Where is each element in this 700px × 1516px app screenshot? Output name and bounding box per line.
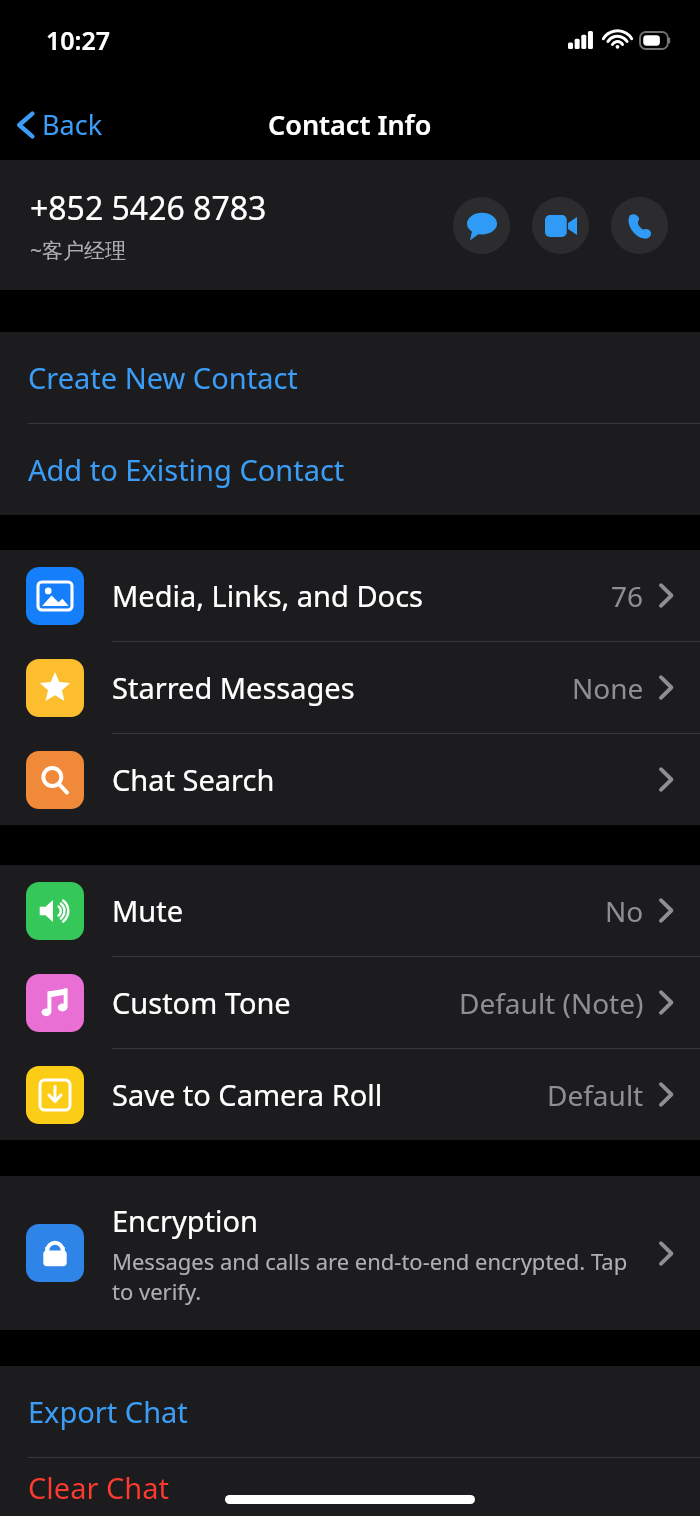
staticText: Clear Chat <box>28 1468 169 1507</box>
button[interactable]: Save to Camera Roll <box>0 1049 700 1140</box>
staticText: Default (Note) <box>459 984 644 1022</box>
button[interactable]: Video call <box>532 197 589 254</box>
staticText: Create New Contact <box>28 358 298 397</box>
staticText: Export Chat <box>28 1392 188 1431</box>
button[interactable]: Message <box>453 197 510 254</box>
button[interactable]: Media, Links, and Docs <box>0 550 700 641</box>
button[interactable]: Export Chat <box>0 1366 700 1457</box>
button[interactable]: Mute <box>0 865 700 956</box>
button[interactable]: Clear Chat <box>0 1458 700 1516</box>
staticText: Save to Camera Roll <box>112 1075 383 1114</box>
staticText: Default <box>547 1076 644 1114</box>
staticText: Contact Info <box>268 106 432 143</box>
button[interactable]: Create New Contact <box>0 332 700 423</box>
button[interactable]: Encryption <box>0 1176 700 1330</box>
staticText: Messages and calls are end-to-end encryp… <box>112 1246 644 1306</box>
staticText: Back <box>42 106 103 143</box>
button[interactable]: Chat Search <box>0 734 700 825</box>
staticText: None <box>572 669 644 707</box>
button[interactable]: Back <box>0 100 117 149</box>
staticText: 76 <box>611 577 644 615</box>
staticText: Media, Links, and Docs <box>112 576 423 615</box>
staticText: No <box>605 892 644 930</box>
staticText: Starred Messages <box>112 668 355 707</box>
staticText: Custom Tone <box>112 983 291 1022</box>
staticText: 10:27 <box>46 23 111 57</box>
staticText: Chat Search <box>112 760 275 799</box>
button[interactable]: Add to Existing Contact <box>0 424 700 515</box>
staticText: Encryption <box>112 1201 258 1240</box>
button[interactable]: Starred Messages <box>0 642 700 733</box>
button[interactable]: Call <box>611 197 668 254</box>
staticText: Add to Existing Contact <box>28 450 345 489</box>
staticText: +852 5426 8783 <box>30 186 267 230</box>
button[interactable]: Custom Tone <box>0 957 700 1048</box>
staticText: Mute <box>112 891 184 930</box>
staticText: ~客户经理 <box>30 236 127 265</box>
